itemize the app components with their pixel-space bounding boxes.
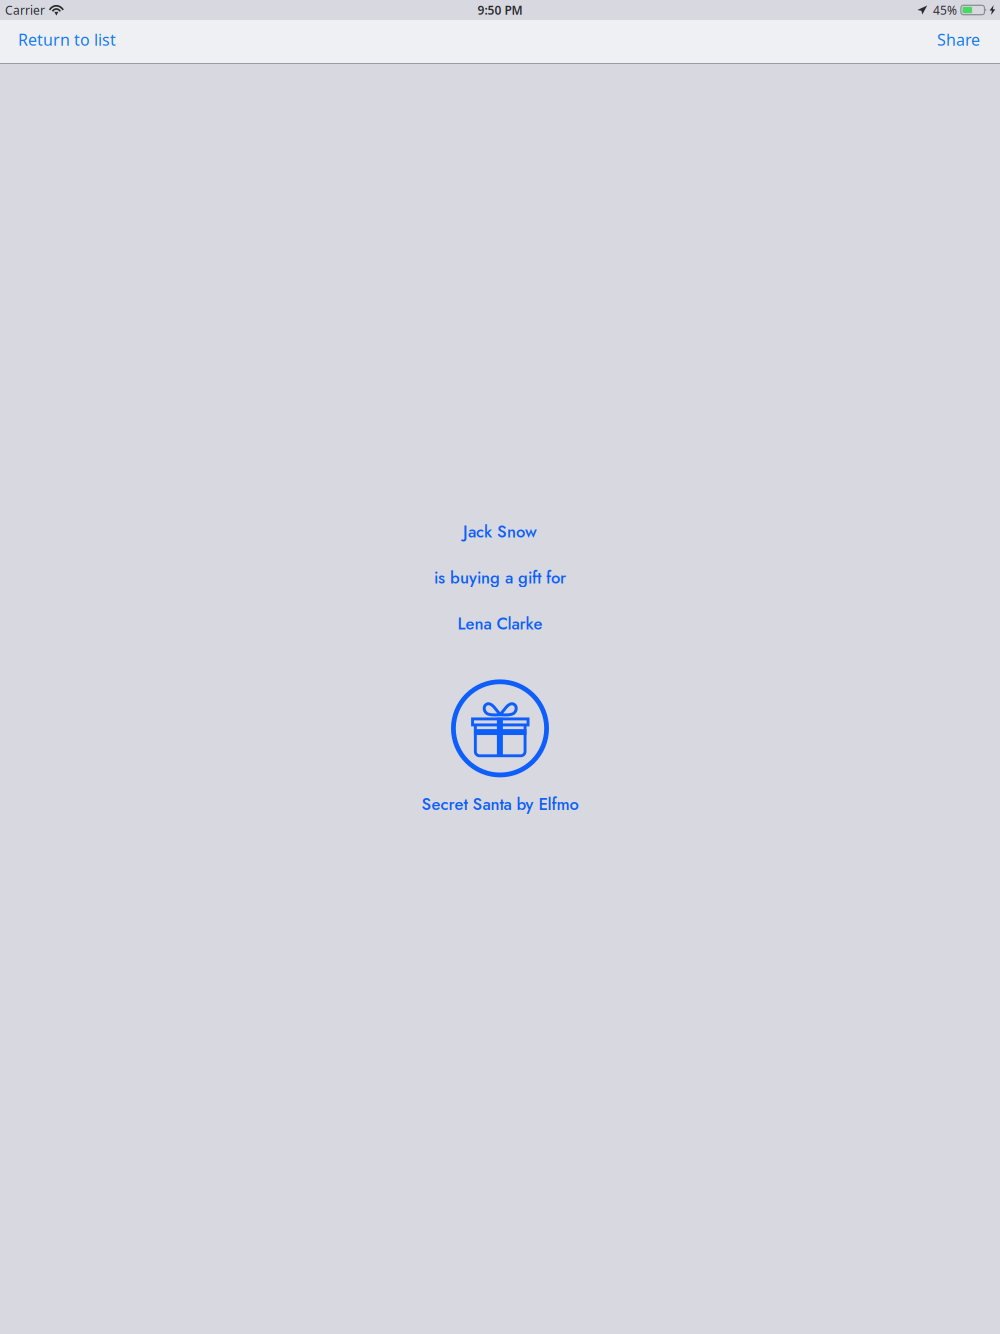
staticText: Lena Clarke (457, 612, 542, 636)
staticText: Carrier (5, 2, 45, 18)
button[interactable]: Share (927, 20, 1000, 63)
staticText: Jack Snow (463, 520, 537, 544)
staticText: is buying a gift for (434, 566, 566, 590)
staticText: 9:50 PM (477, 2, 522, 18)
staticText: 45% (933, 2, 957, 18)
staticText: Return to list (18, 29, 116, 50)
staticText: Secret Santa by Elfmo (421, 792, 578, 816)
staticText: Share (937, 29, 980, 50)
button[interactable]: Return to list (0, 20, 126, 63)
